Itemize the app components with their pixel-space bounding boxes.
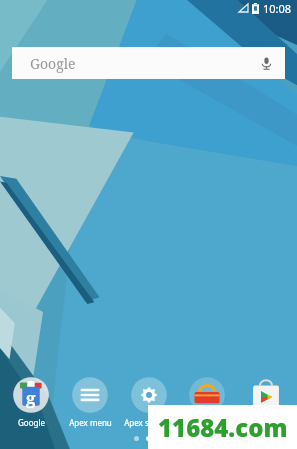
staticText: Google xyxy=(30,54,76,73)
button[interactable]: Google xyxy=(3,375,59,428)
button[interactable]: Apex settings xyxy=(121,375,177,428)
button[interactable]: Google xyxy=(12,47,285,79)
staticText: Google xyxy=(18,417,45,428)
staticText: Apex menu xyxy=(69,417,112,428)
staticText: Toolbox xyxy=(192,417,222,428)
button[interactable]: Toolbox xyxy=(179,375,235,428)
button[interactable]: Apex menu xyxy=(62,375,118,428)
staticText: Play Store xyxy=(247,417,285,428)
staticText: 10:08 xyxy=(263,1,292,16)
staticText: 11684.com xyxy=(158,411,288,444)
button[interactable]: Voice search xyxy=(256,53,276,73)
staticText: Apex settings xyxy=(124,417,175,428)
staticText: g xyxy=(26,386,36,409)
button[interactable]: Play Store xyxy=(238,375,294,428)
